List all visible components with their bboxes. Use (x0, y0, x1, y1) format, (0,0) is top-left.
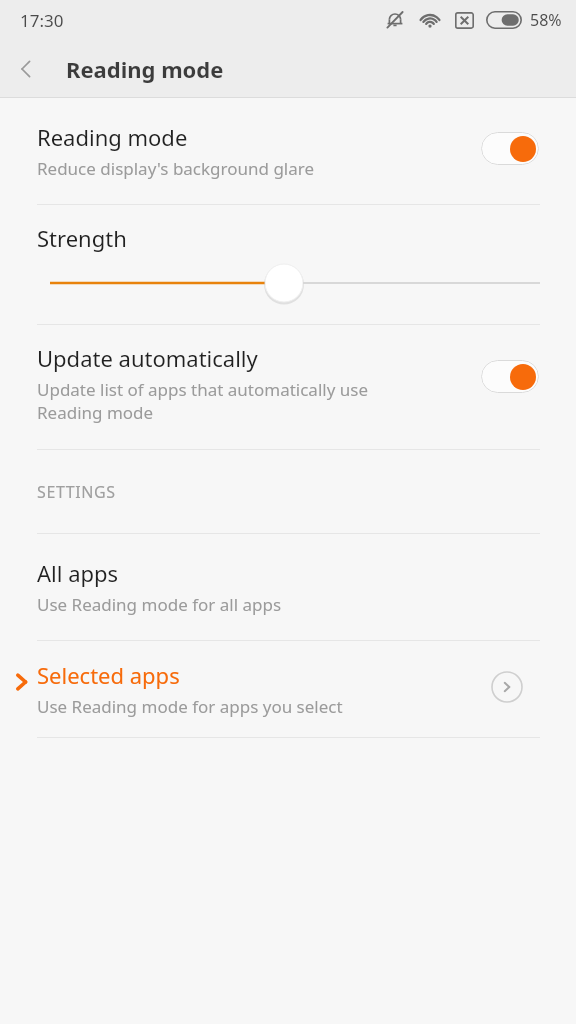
staticText: Reading mode (66, 54, 224, 84)
staticText: Use Reading mode for apps you select (37, 695, 343, 718)
staticText: Use Reading mode for all apps (37, 593, 282, 616)
staticText: Reduce display's background glare (37, 157, 315, 180)
button[interactable]: Toggle (481, 360, 539, 393)
staticText: Selected apps (37, 660, 180, 690)
staticText: Update automatically (37, 343, 258, 373)
staticText: Reading mode (37, 122, 188, 152)
staticText: Update list of apps that automatically u… (37, 378, 437, 424)
staticText: 17:30 (20, 9, 64, 32)
staticText: 58% (530, 9, 562, 31)
button[interactable]: Strength slider (0, 260, 576, 306)
button[interactable]: All apps (0, 534, 576, 640)
button[interactable]: Back (0, 43, 52, 95)
button[interactable]: Update automatically (0, 325, 576, 449)
staticText: Strength (37, 223, 127, 253)
button[interactable]: Reading mode (0, 98, 576, 204)
staticText: All apps (37, 558, 119, 588)
button[interactable]: Toggle (481, 132, 539, 165)
staticText: SETTINGS (37, 481, 116, 503)
button[interactable]: Selected apps (0, 641, 576, 737)
